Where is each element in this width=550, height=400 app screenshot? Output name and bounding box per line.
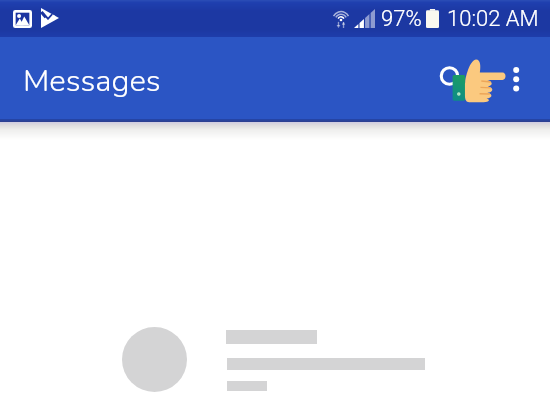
staticText: 97% — [381, 6, 422, 32]
staticText: 10:02 AM — [447, 6, 539, 32]
staticText: Messages — [23, 60, 161, 102]
button[interactable]: More options — [492, 46, 540, 94]
button[interactable]: Search — [425, 52, 473, 100]
